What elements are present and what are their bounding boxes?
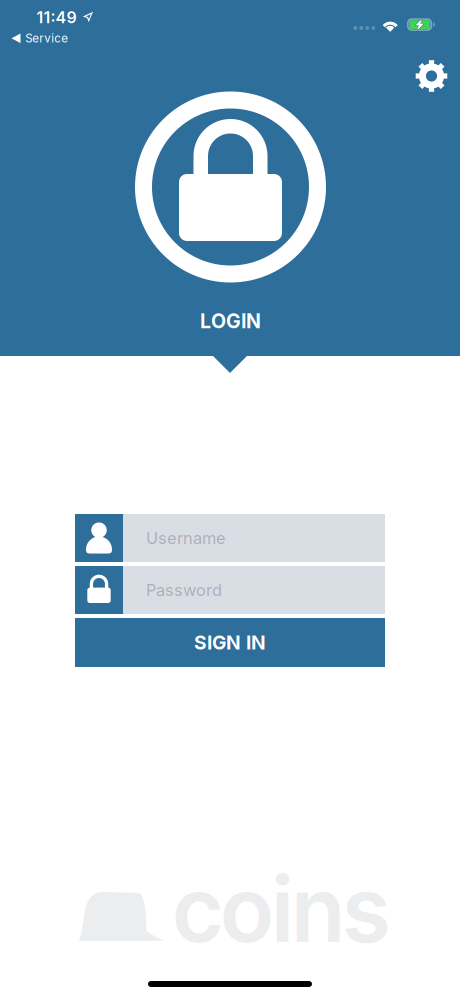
staticText: 11:49 <box>36 8 76 27</box>
staticText: coins <box>173 855 389 963</box>
button[interactable]: Settings <box>405 50 457 102</box>
button[interactable]: SIGN IN <box>75 618 385 667</box>
staticText: LOGIN <box>200 309 261 333</box>
staticText: Service <box>25 31 68 45</box>
staticText: Password <box>146 580 222 600</box>
staticText: Username <box>146 528 226 548</box>
staticText: SIGN IN <box>194 631 266 654</box>
